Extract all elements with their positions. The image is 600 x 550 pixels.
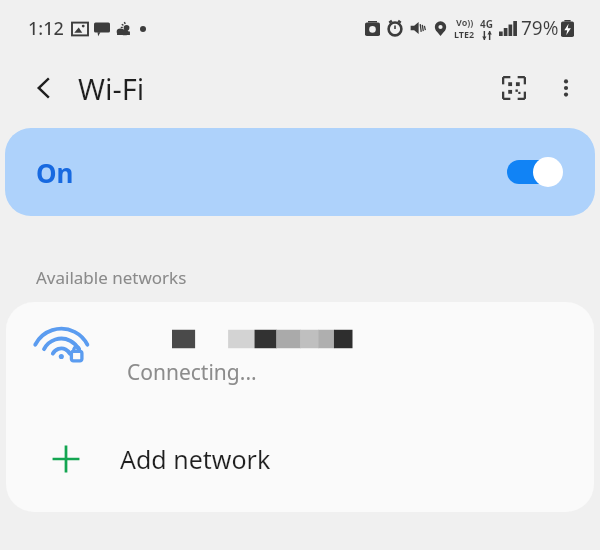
staticText: 79% xyxy=(521,15,559,41)
button[interactable]: More options xyxy=(544,66,588,110)
staticText: LTE2 xyxy=(454,28,475,40)
button[interactable]: Back xyxy=(22,66,66,110)
staticText: 1:12 xyxy=(28,16,64,41)
staticText: On xyxy=(36,155,74,190)
staticText: Connecting... xyxy=(127,358,257,387)
staticText: Vo)) xyxy=(456,16,474,28)
button[interactable]: Add network xyxy=(6,414,594,504)
button[interactable]: Connecting... xyxy=(6,302,594,414)
staticText: Add network xyxy=(120,442,271,476)
button[interactable]: On xyxy=(5,128,595,216)
button[interactable]: Scan QR code xyxy=(492,66,536,110)
staticText: Wi-Fi xyxy=(78,69,145,108)
staticText: Available networks xyxy=(36,266,187,289)
staticText: 4G xyxy=(480,17,493,31)
